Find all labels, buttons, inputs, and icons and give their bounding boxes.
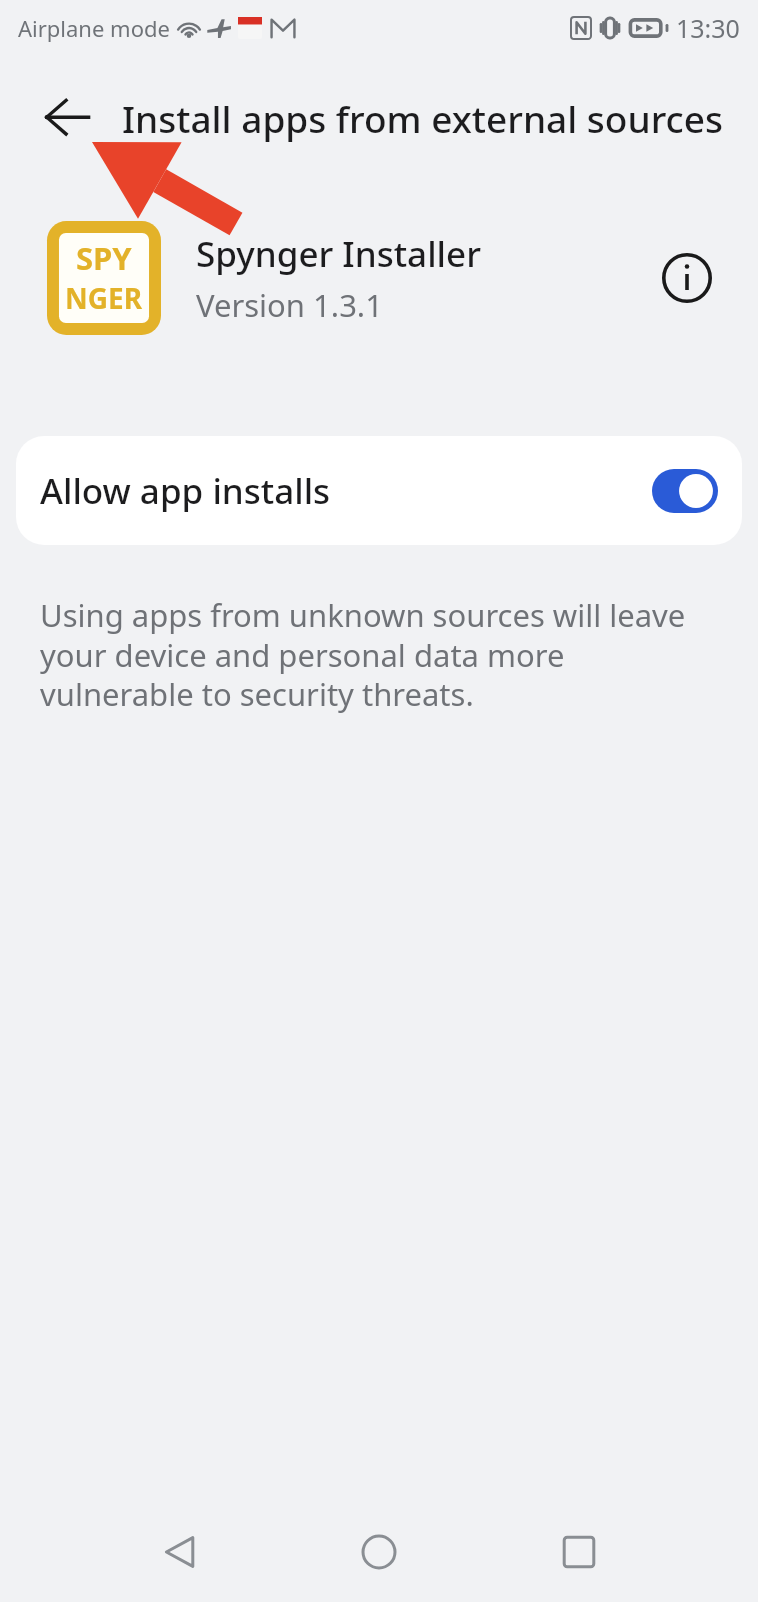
button[interactable]: Home (329, 1502, 429, 1602)
staticText: Using apps from unknown sources will lea… (40, 594, 698, 715)
staticText: Spynger Installer (196, 230, 481, 278)
staticText: Airplane mode (18, 13, 170, 43)
staticText: Version 1.3.1 (196, 284, 383, 326)
staticText: SPY (76, 237, 132, 279)
staticText: Install apps from external sources (122, 93, 723, 143)
button[interactable]: Allow app installs (16, 436, 742, 545)
button[interactable]: Recent apps (529, 1502, 629, 1602)
staticText: Allow app installs (40, 467, 652, 515)
button[interactable]: App info (644, 235, 730, 321)
button[interactable]: Back (31, 90, 103, 146)
button[interactable]: Back (130, 1502, 230, 1602)
staticText: NGER (65, 279, 143, 317)
staticText: 13:30 (676, 11, 740, 45)
